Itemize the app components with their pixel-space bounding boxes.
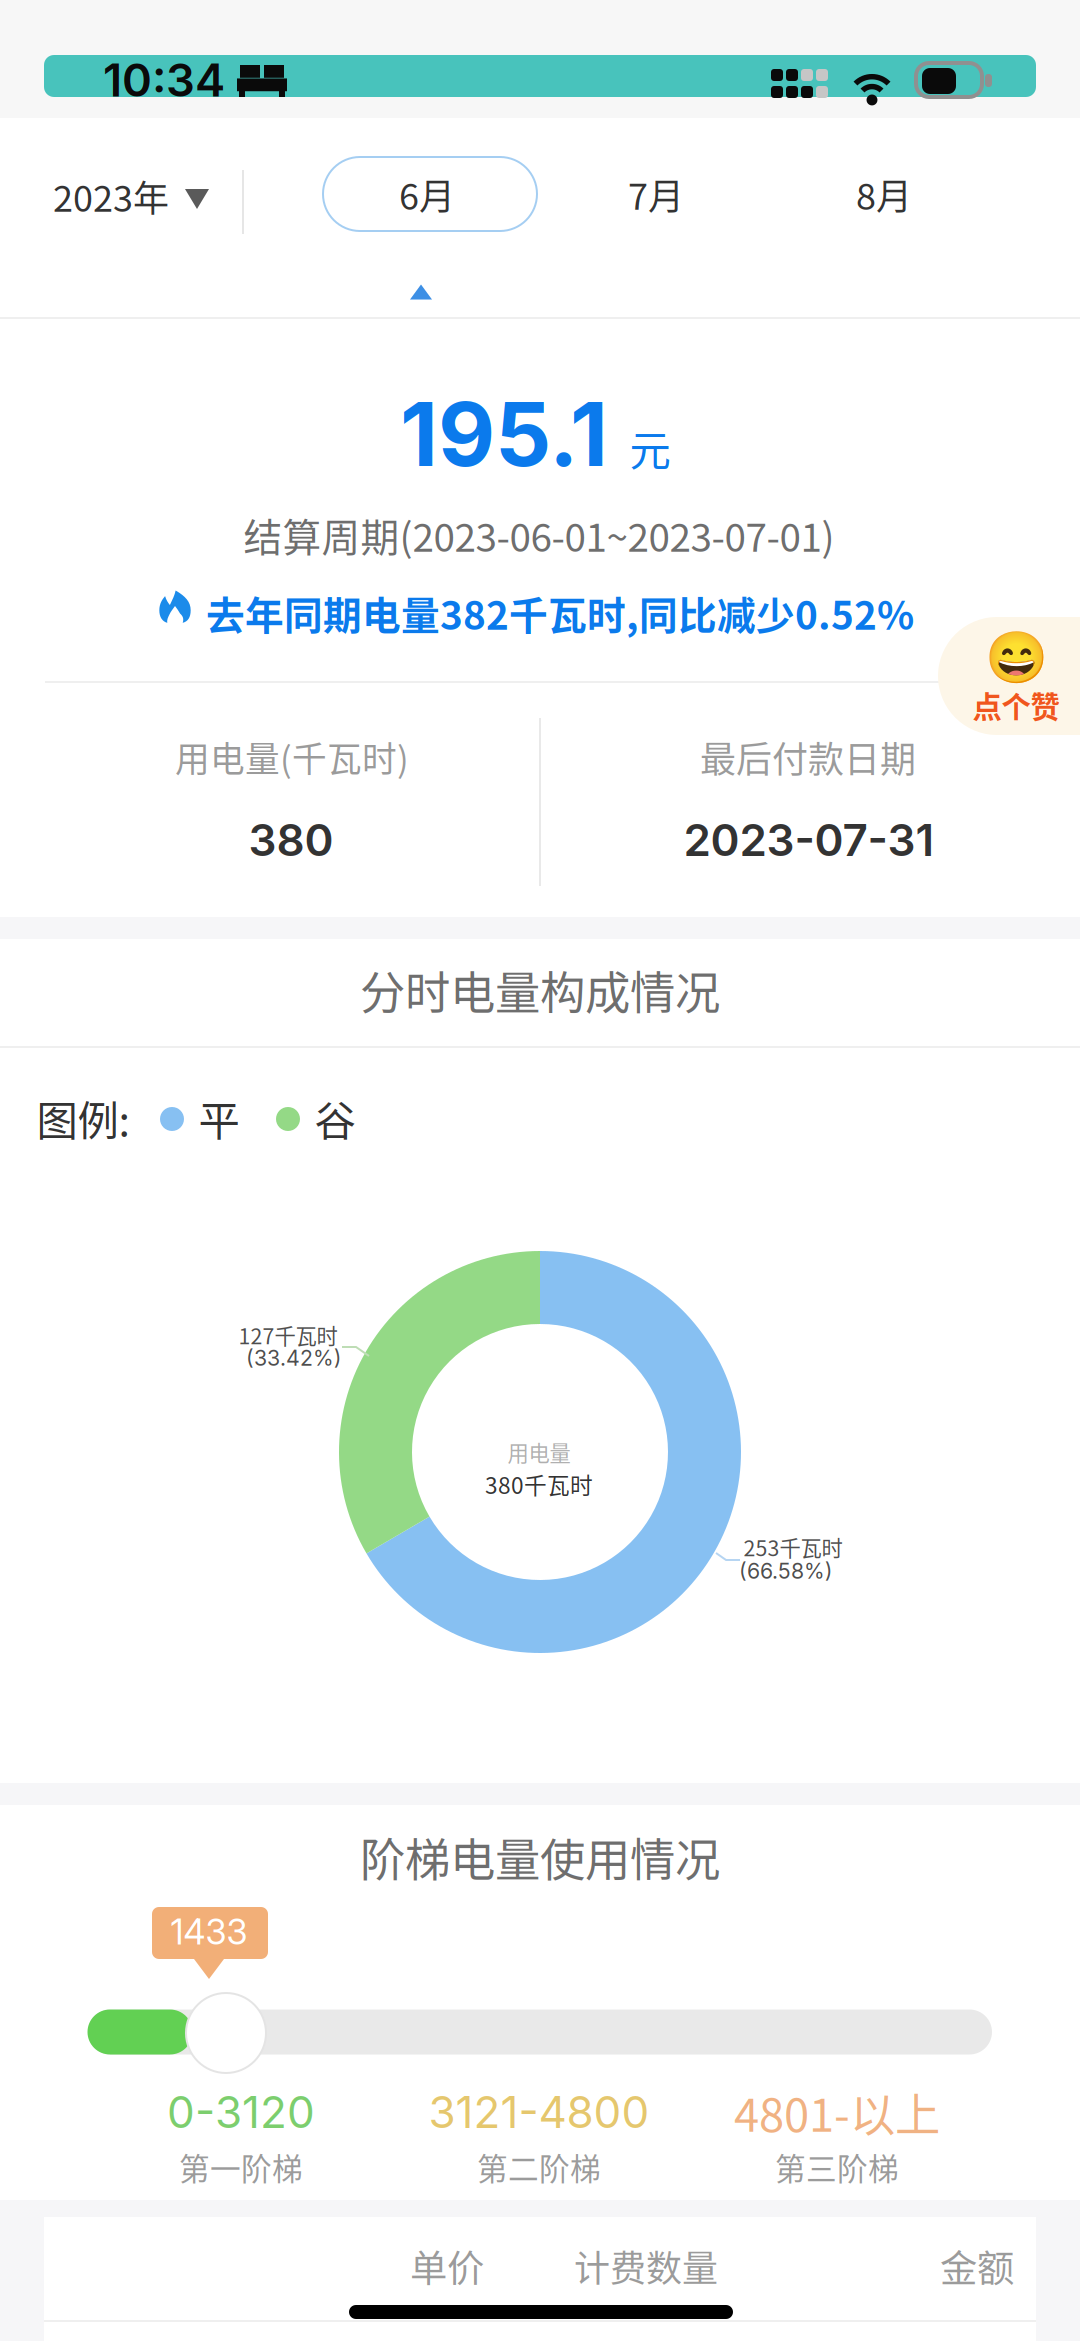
staticText: 最后付款日期 [700, 731, 916, 783]
staticText: 2023-07-31 [683, 813, 934, 867]
staticText: 1433 [170, 1911, 247, 1953]
staticText: (33.42%) [246, 1345, 342, 1371]
staticText: 金额 [940, 2239, 1014, 2293]
staticText: 127千瓦时 [238, 1320, 337, 1350]
staticText: 380 [248, 813, 333, 867]
staticText: 😄 [984, 628, 1047, 688]
staticText: 6月 [399, 168, 455, 220]
staticText: (66.58%) [739, 1558, 833, 1584]
staticText: 去年同期电量382千瓦时,同比减少0.52% [206, 585, 914, 641]
staticText: 3121-4800 [428, 2085, 649, 2139]
button[interactable]: 8月 [777, 157, 991, 231]
button[interactable]: 2023年 [54, 159, 234, 233]
staticText: 253千瓦时 [743, 1532, 842, 1562]
staticText: 计费数量 [574, 2240, 718, 2292]
button[interactable]: 6月 [323, 157, 537, 231]
staticText: 0-3120 [167, 2085, 315, 2139]
staticText: 380千瓦时 [485, 1468, 593, 1500]
staticText: 谷 [314, 1088, 355, 1148]
staticText: 2023年 [53, 170, 169, 222]
staticText: 8月 [856, 168, 912, 220]
button[interactable]: 7月 [549, 157, 763, 231]
staticText: 元 [629, 418, 670, 478]
staticText: 第一阶梯 [179, 2145, 303, 2189]
staticText: 点个赞 [972, 684, 1059, 726]
staticText: 图例: [36, 1088, 129, 1148]
staticText: 分时电量构成情况 [360, 957, 720, 1023]
staticText: 第三阶梯 [775, 2145, 899, 2189]
staticText: 阶梯电量使用情况 [360, 1824, 720, 1890]
staticText: 平 [198, 1088, 239, 1148]
staticText: 第二阶梯 [477, 2145, 601, 2189]
staticText: 4801-以上 [734, 2079, 940, 2145]
staticText: 结算周期(2023-06-01~2023-07-01) [243, 507, 834, 563]
button[interactable]: 点个赞 [938, 617, 1080, 735]
staticText: 195.1 [400, 381, 608, 487]
staticText: 单价 [410, 2239, 484, 2293]
staticText: 用电量(千瓦时) [175, 732, 409, 782]
staticText: 10:34 [103, 53, 225, 107]
staticText: 用电量 [507, 1437, 570, 1467]
staticText: 7月 [628, 168, 684, 220]
